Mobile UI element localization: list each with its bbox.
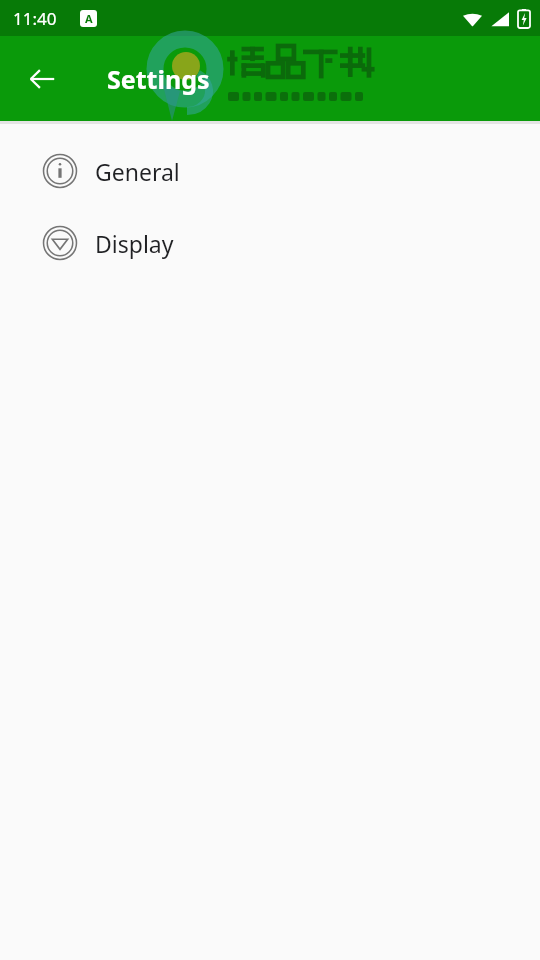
staticText: A xyxy=(85,11,93,26)
button[interactable]: Display xyxy=(0,207,540,279)
staticText: Display xyxy=(95,228,174,259)
button[interactable]: General xyxy=(0,135,540,207)
button[interactable]: Back xyxy=(22,59,62,99)
staticText: General xyxy=(95,156,180,187)
staticText: Settings xyxy=(107,62,210,96)
staticText: 11:40 xyxy=(13,7,57,30)
